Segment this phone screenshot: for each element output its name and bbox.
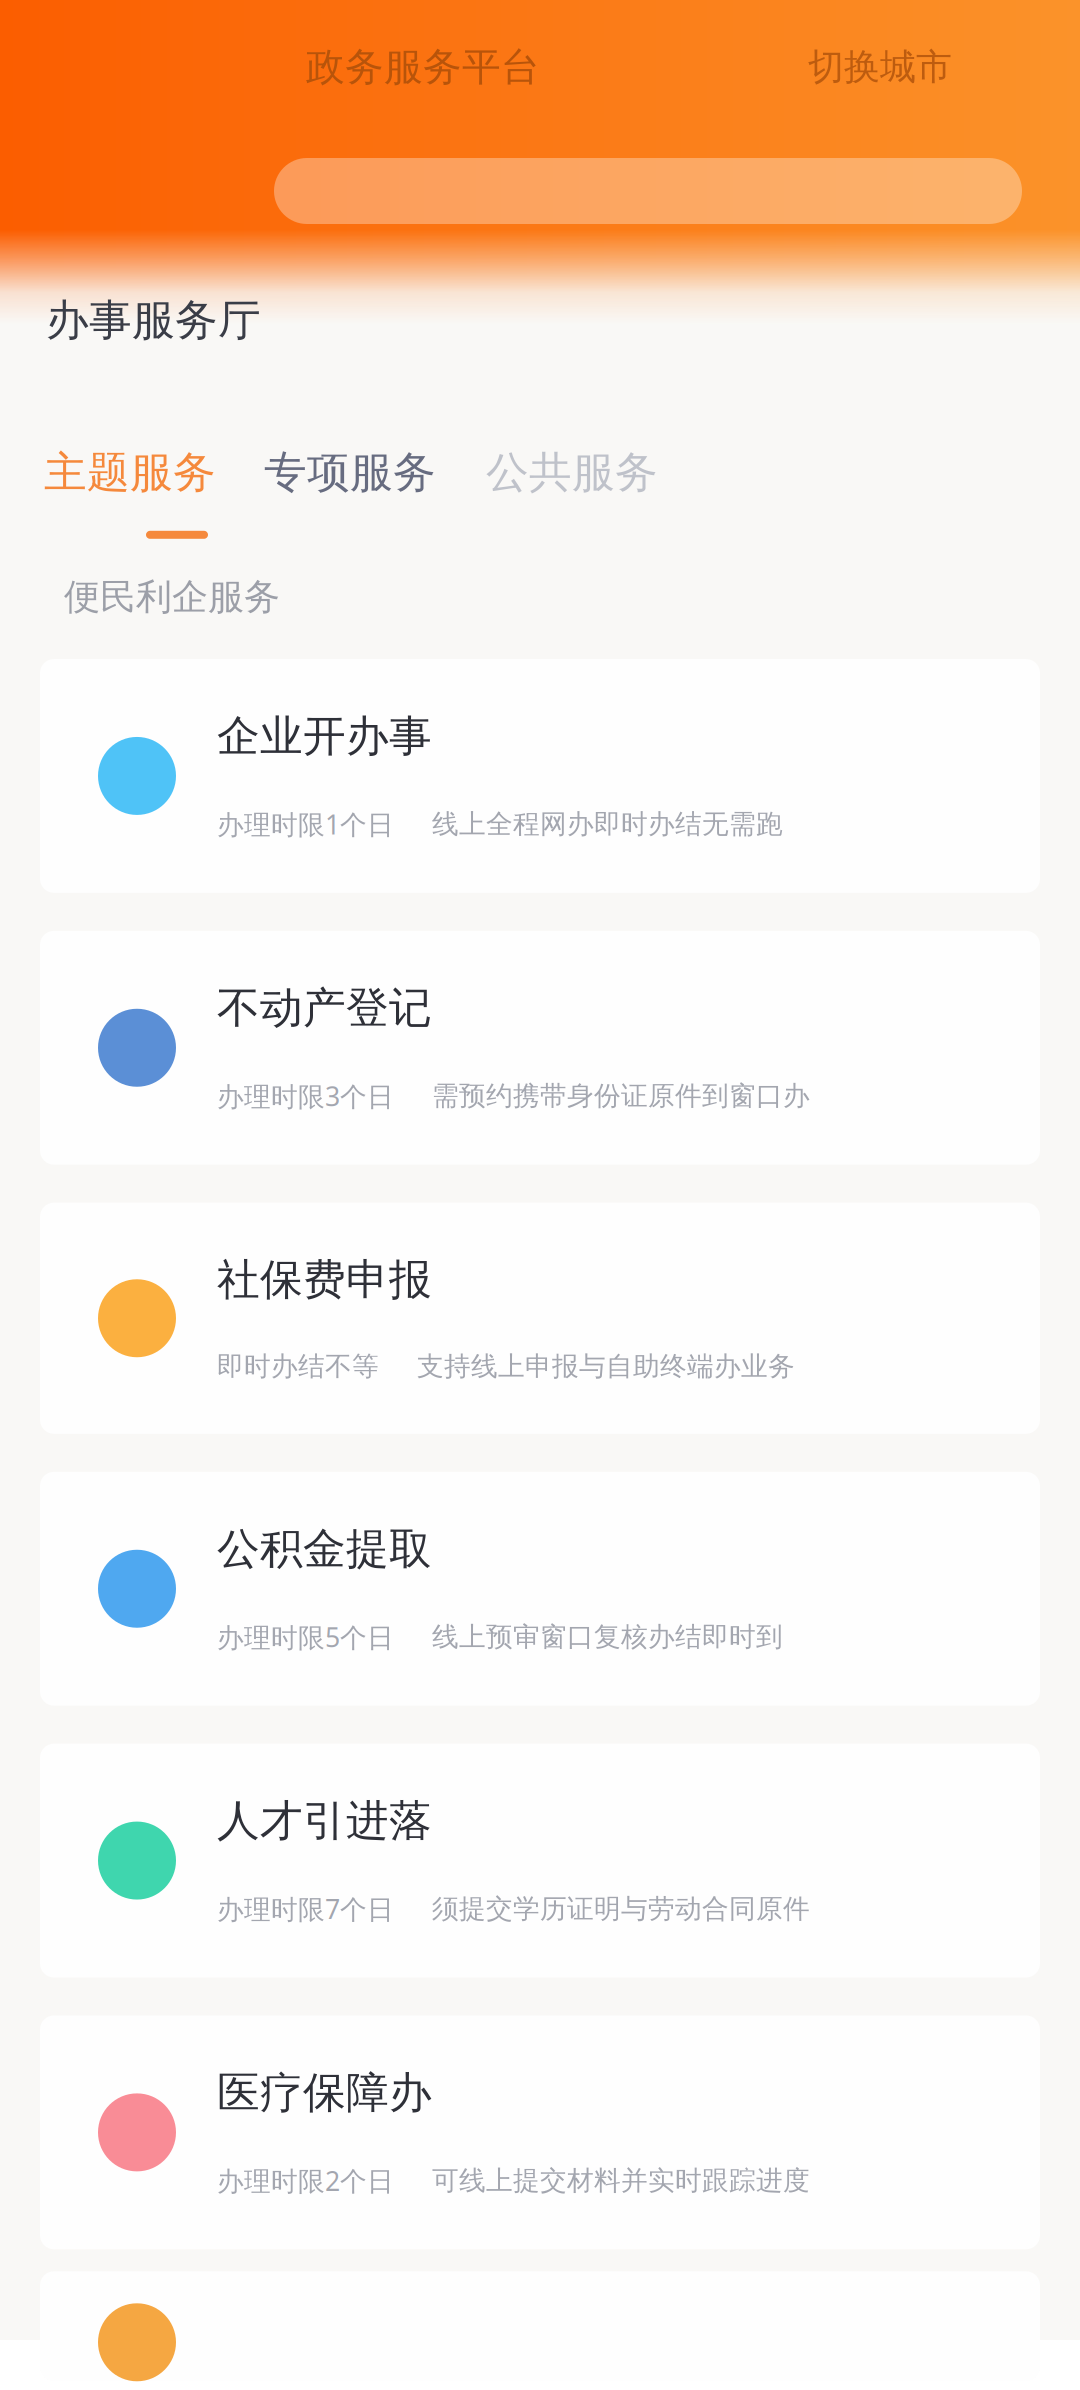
staticText: 办理时限1个日: [217, 806, 394, 842]
staticText: 办理时限2个日: [217, 2163, 394, 2198]
staticText: 公共服务: [486, 446, 658, 499]
staticText: 办理时限3个日: [217, 1078, 394, 1114]
button[interactable]: 专项服务: [264, 446, 436, 539]
staticText: 须提交学历证明与劳动合同原件: [432, 1892, 810, 1925]
staticText: 即时办结不等: [217, 1350, 379, 1383]
staticText: 医疗保障办: [217, 2066, 432, 2119]
staticText: 办理时限5个日: [217, 1619, 394, 1655]
button[interactable]: 社保费申报: [40, 1203, 1040, 1434]
staticText: 支持线上申报与自助终端办业务: [417, 1350, 795, 1383]
button[interactable]: 人才引进落: [40, 1744, 1040, 1977]
staticText: 需预约携带身份证原件到窗口办: [432, 1080, 810, 1112]
staticText: 便民利企服务: [64, 575, 280, 619]
staticText: 办事服务厅: [46, 294, 261, 346]
staticText: 不动产登记: [217, 982, 432, 1034]
staticText: 主题服务: [44, 446, 216, 499]
staticText: 切换城市: [808, 45, 952, 89]
staticText: 线上预审窗口复核办结即时到: [432, 1621, 783, 1653]
staticText: 线上全程网办即时办结无需跑: [432, 808, 783, 841]
staticText: 企业开办事: [217, 710, 432, 762]
staticText: 可线上提交材料并实时跟踪进度: [432, 2164, 810, 2197]
button[interactable]: 公共服务: [486, 446, 658, 539]
staticText: 政务服务平台: [306, 43, 540, 91]
button[interactable]: 医疗保障办: [40, 2015, 1040, 2249]
button[interactable]: 不动产登记: [40, 931, 1040, 1165]
button[interactable]: 企业开办事: [40, 659, 1040, 893]
button[interactable]: 主题服务: [44, 446, 216, 539]
staticText: 社保费申报: [217, 1254, 432, 1306]
staticText: 人才引进落: [217, 1795, 432, 1847]
staticText: 专项服务: [264, 446, 436, 499]
staticText: 公积金提取: [217, 1523, 432, 1575]
button[interactable]: 公积金提取: [40, 1472, 1040, 1706]
staticText: 办理时限7个日: [217, 1891, 394, 1926]
